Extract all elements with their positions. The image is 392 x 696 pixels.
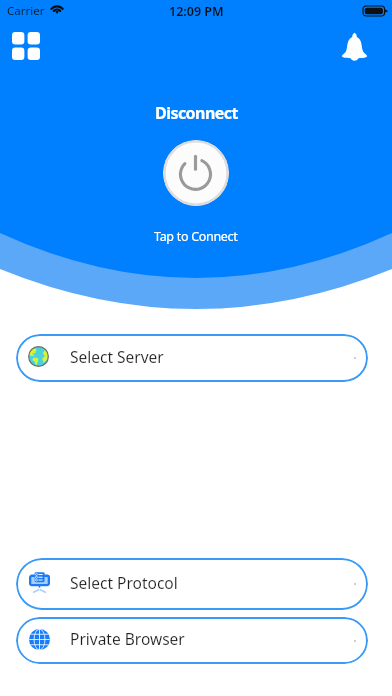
- staticText: Select Server: [70, 346, 164, 367]
- staticText: Private Browser: [70, 628, 185, 649]
- staticText: Carrier: [7, 3, 45, 19]
- staticText: Tap to Connect: [154, 228, 238, 245]
- button[interactable]: Power toggle: [163, 140, 229, 206]
- button[interactable]: Select Server: [16, 334, 368, 382]
- button[interactable]: Select Protocol: [16, 558, 368, 610]
- button[interactable]: Private Browser: [16, 617, 368, 664]
- button[interactable]: Notifications: [332, 24, 376, 68]
- button[interactable]: Menu: [4, 24, 48, 68]
- staticText: 12:09 PM: [169, 3, 224, 20]
- staticText: Disconnect: [155, 102, 238, 124]
- staticText: Select Protocol: [70, 572, 178, 593]
